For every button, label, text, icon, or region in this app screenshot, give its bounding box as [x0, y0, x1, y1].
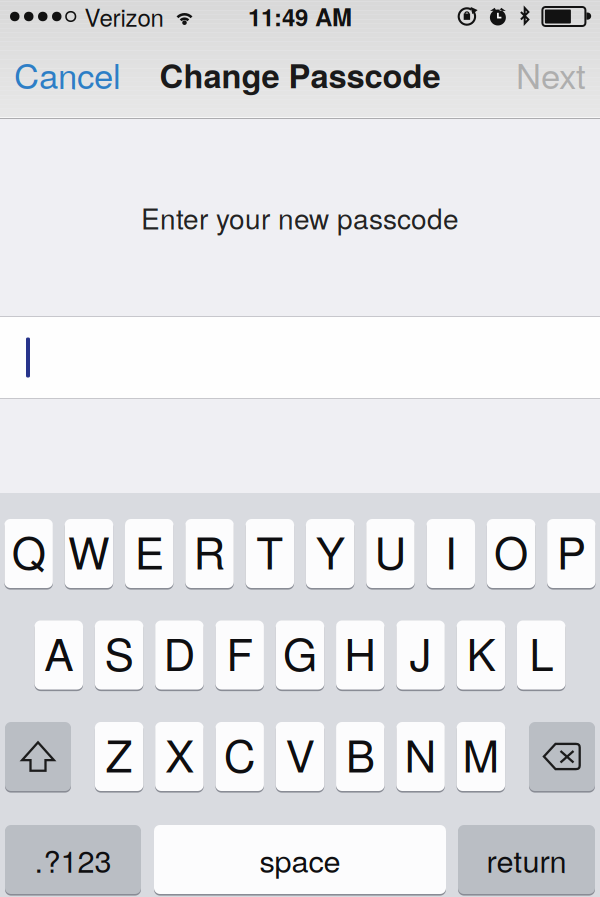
staticText: H: [344, 620, 376, 683]
button[interactable]: E: [125, 519, 173, 588]
button[interactable]: G: [276, 620, 324, 689]
button[interactable]: B: [336, 722, 385, 791]
staticText: W: [68, 519, 110, 582]
staticText: O: [494, 519, 528, 582]
staticText: N: [405, 722, 437, 785]
button[interactable]: Delete: [529, 722, 595, 791]
button[interactable]: R: [185, 519, 234, 588]
button[interactable]: F: [215, 620, 264, 689]
button[interactable]: H: [336, 620, 385, 689]
staticText: M: [462, 722, 499, 785]
staticText: V: [285, 722, 314, 785]
staticText: A: [44, 620, 73, 683]
button[interactable]: S: [95, 620, 143, 689]
button[interactable]: T: [246, 519, 294, 588]
staticText: S: [105, 620, 134, 683]
button[interactable]: .?123: [5, 825, 141, 894]
button[interactable]: W: [65, 519, 113, 588]
staticText: Y: [316, 519, 345, 582]
staticText: T: [256, 519, 283, 582]
staticText: K: [466, 620, 495, 683]
button[interactable]: D: [155, 620, 204, 689]
staticText: 11:49 AM: [248, 0, 352, 34]
button[interactable]: Z: [95, 722, 143, 791]
button[interactable]: J: [396, 620, 445, 689]
staticText: Verizon: [84, 0, 163, 34]
staticText: J: [410, 620, 432, 683]
button[interactable]: P: [547, 519, 596, 588]
staticText: L: [529, 620, 553, 683]
button[interactable]: space: [154, 825, 446, 894]
button[interactable]: N: [396, 722, 445, 791]
staticText: Q: [12, 519, 46, 582]
staticText: E: [135, 519, 164, 582]
staticText: R: [194, 519, 226, 582]
button[interactable]: M: [457, 722, 505, 791]
staticText: space: [259, 837, 340, 881]
button[interactable]: K: [457, 620, 505, 689]
staticText: C: [224, 722, 256, 785]
staticText: F: [226, 620, 253, 683]
button[interactable]: Next: [506, 41, 600, 119]
button[interactable]: Cancel: [0, 41, 131, 119]
staticText: Change Passcode: [159, 52, 440, 98]
staticText: G: [283, 620, 317, 683]
button[interactable]: Q: [4, 519, 53, 588]
button[interactable]: O: [487, 519, 535, 588]
button[interactable]: return: [458, 825, 595, 894]
staticText: Cancel: [14, 49, 121, 99]
staticText: Z: [106, 722, 133, 785]
staticText: .?123: [34, 837, 111, 881]
staticText: B: [346, 722, 375, 785]
button[interactable]: Shift: [5, 722, 71, 791]
button[interactable]: X: [155, 722, 204, 791]
button[interactable]: C: [215, 722, 264, 791]
button[interactable]: L: [517, 620, 565, 689]
staticText: U: [374, 519, 406, 582]
staticText: D: [163, 620, 195, 683]
button[interactable]: V: [276, 722, 324, 791]
staticText: P: [557, 519, 586, 582]
staticText: return: [486, 837, 566, 881]
staticText: X: [165, 722, 194, 785]
button[interactable]: A: [35, 620, 83, 689]
button[interactable]: U: [366, 519, 415, 588]
button[interactable]: I: [426, 519, 475, 588]
button[interactable]: Y: [306, 519, 354, 588]
staticText: Enter your new passcode: [141, 197, 459, 238]
staticText: I: [445, 519, 457, 582]
staticText: Next: [516, 49, 586, 99]
